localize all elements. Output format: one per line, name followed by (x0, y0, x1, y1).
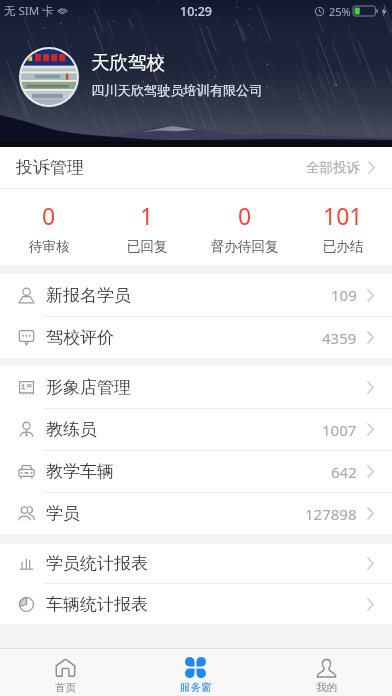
button[interactable]: 服务窗 (130, 649, 261, 696)
staticText: 0 (42, 200, 56, 231)
staticText: 101 (323, 200, 363, 231)
staticText: 1007 (322, 420, 357, 440)
staticText: 驾校评价 (46, 327, 114, 348)
staticText: 642 (331, 462, 357, 482)
staticText: 四川天欣驾驶员培训有限公司 (91, 82, 263, 99)
button[interactable]: 形象店管理 (0, 366, 392, 408)
button[interactable]: 新报名学员 (0, 274, 392, 316)
staticText: 天欣驾校 (91, 51, 165, 74)
staticText: 学员统计报表 (46, 553, 148, 574)
staticText: 109 (331, 285, 357, 305)
button[interactable]: 首页 (0, 649, 130, 696)
staticText: 4359 (322, 328, 357, 348)
staticText: 10:29 (180, 3, 213, 20)
button[interactable]: 驾校评价 (0, 317, 392, 358)
staticText: 无 SIM 卡 (4, 3, 54, 19)
button[interactable]: 教学车辆 (0, 451, 392, 492)
button[interactable]: 1 (98, 189, 196, 265)
button[interactable]: 学员 (0, 493, 392, 534)
button[interactable]: 101 (294, 189, 392, 265)
staticText: 1 (140, 200, 154, 231)
staticText: 服务窗 (180, 681, 212, 694)
other: 服务窗 (185, 657, 206, 678)
staticText: 我的 (316, 681, 337, 694)
staticText: 投诉管理 (16, 157, 84, 178)
staticText: 全部投诉 (306, 159, 360, 176)
other: 首页 (55, 657, 76, 678)
staticText: 127898 (305, 504, 357, 524)
staticText: 首页 (55, 681, 76, 694)
staticText: 学员 (46, 503, 80, 524)
staticText: 教练员 (46, 419, 97, 440)
staticText: 教学车辆 (46, 461, 114, 482)
staticText: 形象店管理 (46, 377, 131, 398)
staticText: 0 (238, 200, 252, 231)
button[interactable]: 0 (0, 189, 98, 265)
button[interactable]: 车辆统计报表 (0, 584, 392, 624)
staticText: 督办待回复 (211, 238, 279, 255)
button[interactable]: 投诉管理 (0, 147, 392, 188)
other: 我的 (316, 657, 337, 678)
button[interactable]: 0 (196, 189, 294, 265)
button[interactable]: 学员统计报表 (0, 544, 392, 583)
staticText: 车辆统计报表 (46, 594, 148, 615)
staticText: 待审核 (29, 238, 70, 255)
staticText: 新报名学员 (46, 285, 131, 306)
staticText: 已办结 (323, 238, 364, 255)
button[interactable]: 教练员 (0, 409, 392, 450)
staticText: 25% (329, 4, 351, 19)
staticText: 已回复 (127, 238, 168, 255)
button[interactable]: 我的 (261, 649, 392, 696)
